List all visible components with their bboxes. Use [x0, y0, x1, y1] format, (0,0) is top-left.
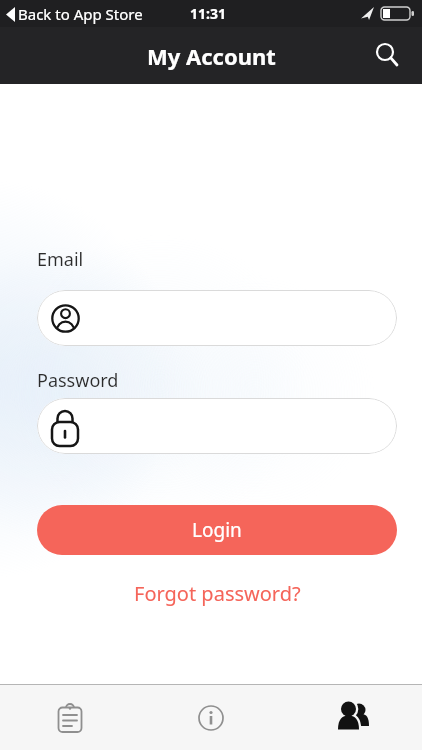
button[interactable]: [281, 685, 422, 750]
button[interactable]: [140, 685, 281, 750]
staticText: 11:31: [190, 4, 226, 23]
staticText: Login: [192, 517, 242, 543]
staticText: Email: [37, 247, 84, 272]
button[interactable]: Login: [37, 505, 397, 555]
button[interactable]: [372, 41, 402, 71]
button[interactable]: [37, 290, 397, 346]
staticText: Back to App Store: [18, 4, 143, 24]
staticText: My Account: [147, 41, 276, 71]
staticText: Password: [37, 368, 119, 393]
button[interactable]: [37, 398, 397, 454]
button[interactable]: Forgot password?: [134, 580, 301, 607]
button[interactable]: [0, 685, 140, 750]
